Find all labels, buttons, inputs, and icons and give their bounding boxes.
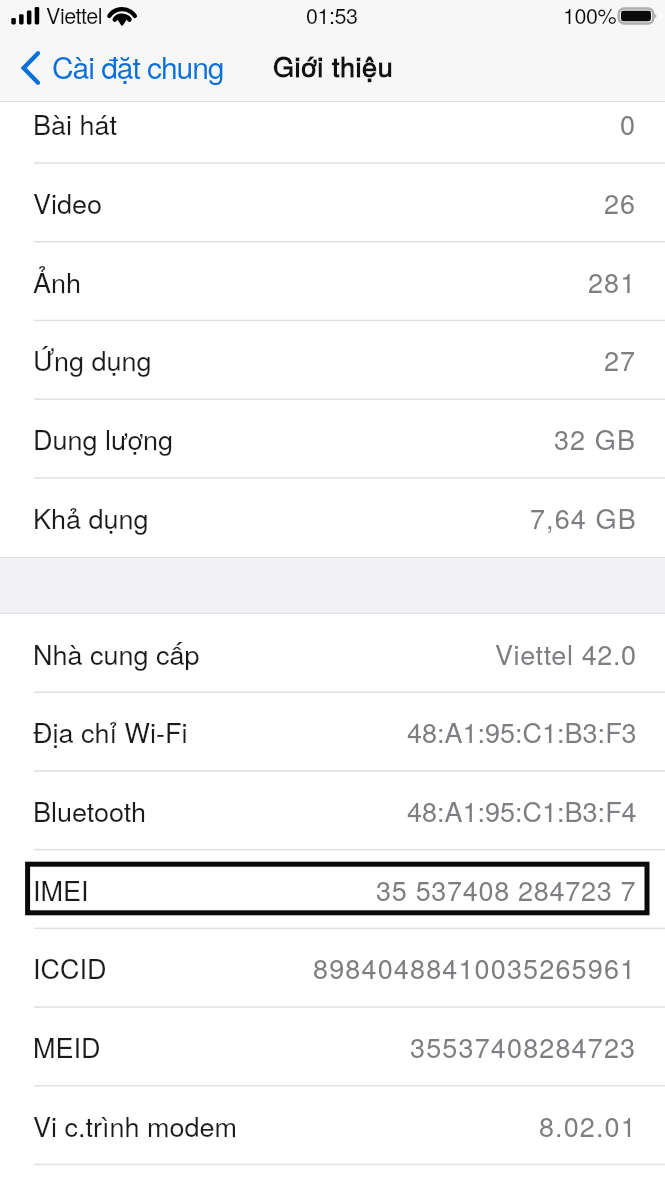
button[interactable]: Bluetooth bbox=[0, 771, 665, 850]
staticText: ICCID bbox=[33, 948, 107, 987]
staticText: Cài đặt chung bbox=[52, 45, 224, 88]
staticText: 27 bbox=[604, 340, 637, 379]
staticText: Nhà cung cấp bbox=[33, 634, 200, 673]
button[interactable]: IMEI bbox=[0, 850, 665, 929]
staticText: MEID bbox=[33, 1027, 101, 1066]
staticText: 7,64 GB bbox=[530, 498, 637, 537]
staticText: 48:A1:95:C1:B3:F3 bbox=[407, 712, 637, 751]
staticText: Giới thiệu bbox=[273, 46, 394, 85]
staticText: 100% bbox=[563, 0, 617, 30]
staticText: Địa chỉ Wi-Fi bbox=[33, 712, 188, 751]
staticText: Viettel bbox=[46, 0, 103, 30]
button[interactable]: Video bbox=[0, 163, 665, 242]
button[interactable]: Vi c.trình modem bbox=[0, 1086, 665, 1165]
staticText: Viettel 42.0 bbox=[495, 634, 637, 673]
button[interactable]: ICCID bbox=[0, 928, 665, 1007]
staticText: 48:A1:95:C1:B3:F4 bbox=[407, 791, 637, 830]
button[interactable]: Bài hát bbox=[0, 84, 665, 163]
staticText: 281 bbox=[588, 262, 637, 301]
button[interactable]: Ảnh bbox=[0, 242, 665, 321]
staticText: 35 537408 284723 7 bbox=[376, 870, 637, 909]
staticText: Ảnh bbox=[33, 262, 82, 301]
button[interactable]: Nhà cung cấp bbox=[0, 614, 665, 693]
staticText: 01:53 bbox=[306, 0, 358, 30]
staticText: 89840488410035265961 bbox=[313, 948, 637, 987]
button[interactable]: Ứng dụng bbox=[0, 320, 665, 399]
button[interactable]: Khả dụng bbox=[0, 478, 665, 557]
staticText: Bài hát bbox=[33, 104, 118, 143]
staticText: Ứng dụng bbox=[33, 340, 152, 379]
staticText: Vi c.trình modem bbox=[33, 1106, 238, 1145]
staticText: Khả dụng bbox=[33, 498, 149, 537]
button[interactable]: MEID bbox=[0, 1007, 665, 1086]
staticText: 32 GB bbox=[554, 419, 637, 458]
staticText: 8.02.01 bbox=[539, 1106, 637, 1145]
staticText: 26 bbox=[604, 183, 637, 222]
staticText: Video bbox=[33, 183, 103, 222]
button[interactable]: Dung lượng bbox=[0, 399, 665, 478]
staticText: 35537408284723 bbox=[410, 1027, 637, 1066]
button[interactable]: Địa chỉ Wi-Fi bbox=[0, 692, 665, 771]
staticText: IMEI bbox=[33, 870, 89, 909]
staticText: 0 bbox=[620, 104, 637, 143]
staticText: Bluetooth bbox=[33, 791, 147, 830]
staticText: Dung lượng bbox=[33, 419, 174, 458]
button[interactable]: Cài đặt chung bbox=[0, 34, 236, 101]
